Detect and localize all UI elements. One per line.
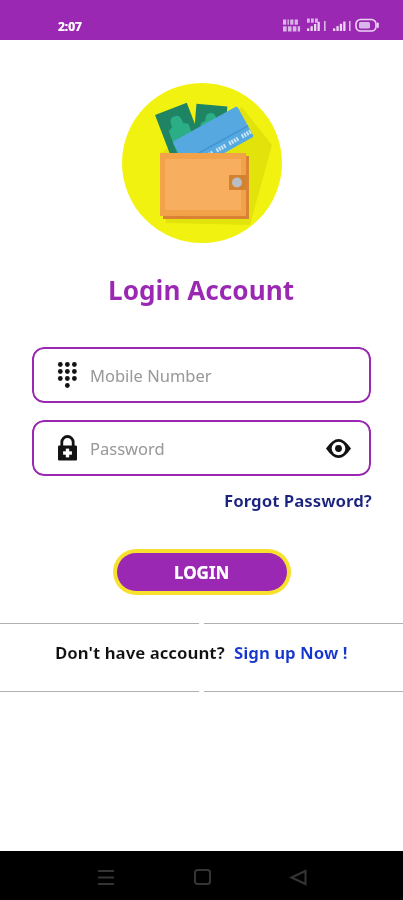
staticText: Sign up Now !: [234, 641, 348, 664]
button[interactable]: Recent apps: [82, 853, 130, 900]
staticText: Login Account: [108, 272, 295, 308]
button[interactable]: Back: [274, 853, 322, 900]
button[interactable]: Show password: [326, 439, 351, 458]
button[interactable]: Mobile Number: [32, 347, 371, 403]
button[interactable]: Sign up Now !: [234, 641, 348, 664]
staticText: 2:07: [58, 18, 82, 34]
staticText: Forgot Password?: [224, 489, 372, 512]
button[interactable]: Home: [178, 853, 226, 900]
button[interactable]: LOGIN: [117, 553, 287, 591]
staticText: LOGIN: [174, 561, 230, 584]
button[interactable]: Password: [32, 420, 371, 476]
staticText: Mobile Number: [90, 364, 212, 386]
button[interactable]: Forgot Password?: [224, 489, 372, 512]
staticText: Don't have account?: [55, 641, 225, 664]
staticText: Password: [90, 437, 165, 459]
other: Show password: [326, 439, 351, 458]
